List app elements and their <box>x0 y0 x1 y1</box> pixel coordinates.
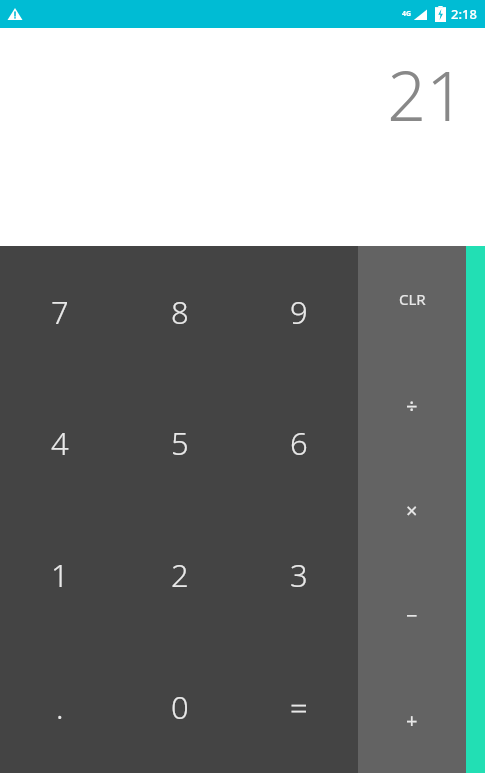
button[interactable]: 5 <box>120 377 239 509</box>
staticText: ÷ <box>406 392 418 419</box>
button[interactable]: 7 <box>0 246 120 377</box>
staticText: 1 <box>51 554 69 596</box>
button[interactable]: 1 <box>0 509 120 641</box>
staticText: 2:18 <box>451 5 477 23</box>
staticText: 7 <box>51 291 69 333</box>
staticText: . <box>56 686 64 728</box>
button[interactable]: 8 <box>120 246 239 377</box>
button[interactable]: 2 <box>120 509 239 641</box>
staticText: − <box>406 602 418 629</box>
button[interactable]: 3 <box>239 509 358 641</box>
staticText: + <box>406 707 418 734</box>
button[interactable]: 6 <box>239 377 358 509</box>
button[interactable]: Subtract <box>358 563 466 668</box>
button[interactable]: 4 <box>0 377 120 509</box>
staticText: = <box>290 686 308 728</box>
button[interactable]: Add <box>358 668 466 773</box>
button[interactable]: 9 <box>239 246 358 377</box>
staticText: CLR <box>399 289 426 309</box>
staticText: 4G <box>402 9 412 19</box>
staticText: 5 <box>171 422 189 464</box>
staticText: 3 <box>290 554 308 596</box>
staticText: 0 <box>171 686 189 728</box>
staticText: 8 <box>171 291 189 333</box>
button[interactable]: Multiply <box>358 458 466 563</box>
button[interactable]: . <box>0 641 120 773</box>
staticText: 9 <box>290 291 308 333</box>
staticText: 4 <box>51 422 69 464</box>
button[interactable]: Divide <box>358 352 466 458</box>
staticText: × <box>406 497 418 524</box>
staticText: 6 <box>290 422 308 464</box>
staticText: 21 <box>387 48 465 141</box>
button[interactable]: = <box>239 641 358 773</box>
staticText: 2 <box>171 554 189 596</box>
button[interactable]: 0 <box>120 641 239 773</box>
button[interactable]: Clear <box>358 246 466 352</box>
